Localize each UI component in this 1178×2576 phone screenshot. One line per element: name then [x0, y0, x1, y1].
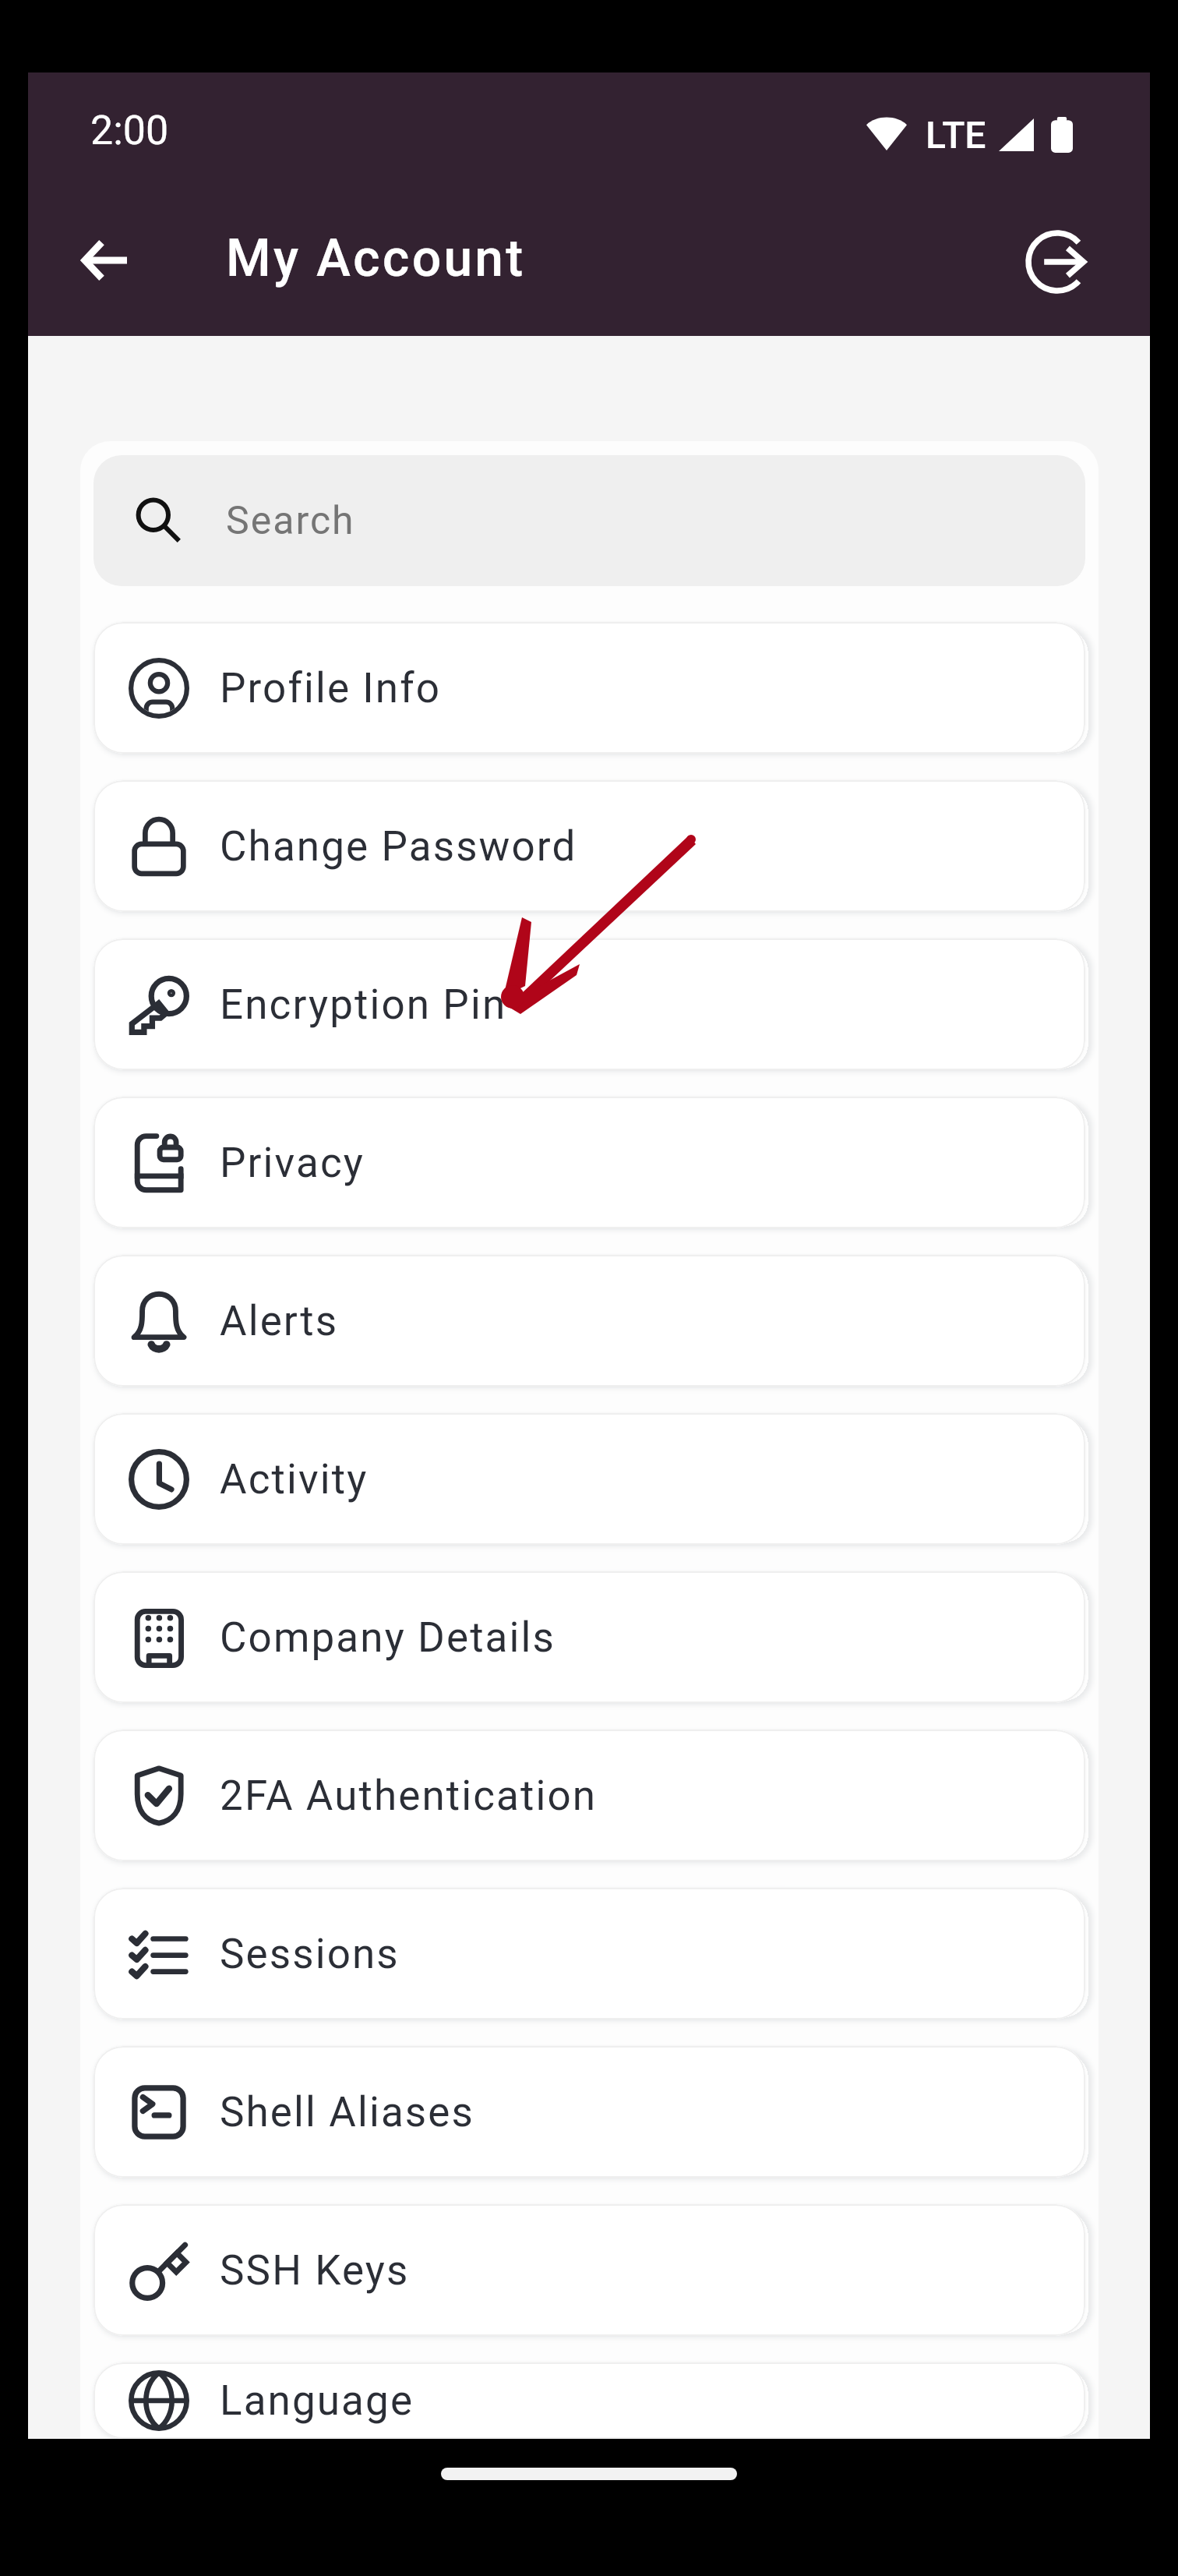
button[interactable]: SSH Keys — [93, 2204, 1085, 2336]
button[interactable]: Search — [93, 455, 1085, 586]
button[interactable]: Change Password — [93, 780, 1085, 912]
button[interactable]: Back — [70, 226, 139, 295]
staticText: Company Details — [220, 1613, 555, 1662]
staticText: Shell Aliases — [220, 2088, 474, 2136]
staticText: SSH Keys — [220, 2246, 410, 2295]
staticText: Language — [220, 2376, 414, 2425]
staticText: Profile Info — [220, 664, 442, 712]
staticText: 2FA Authentication — [220, 1772, 598, 1820]
button[interactable]: Activity — [93, 1413, 1085, 1545]
staticText: Alerts — [220, 1297, 339, 1345]
button[interactable]: 2FA Authentication — [93, 1730, 1085, 1861]
button[interactable]: Company Details — [93, 1571, 1085, 1703]
staticText: Sessions — [220, 1930, 400, 1978]
staticText: My Account — [226, 228, 526, 288]
button[interactable]: Alerts — [93, 1255, 1085, 1387]
staticText: Activity — [220, 1455, 369, 1504]
button[interactable]: Shell Aliases — [93, 2046, 1085, 2178]
button[interactable]: Language — [93, 2362, 1085, 2439]
staticText: Privacy — [220, 1139, 365, 1187]
staticText: Search — [226, 498, 355, 544]
button[interactable]: Privacy — [93, 1097, 1085, 1228]
button[interactable]: Encryption Pin — [93, 938, 1085, 1070]
staticText: 2:00 — [90, 107, 169, 154]
button[interactable]: Log out — [1020, 224, 1095, 299]
staticText: LTE — [926, 113, 986, 157]
staticText: Change Password — [220, 822, 577, 871]
staticText: Encryption Pin — [220, 981, 507, 1029]
button[interactable]: Profile Info — [93, 622, 1085, 754]
button[interactable]: Sessions — [93, 1888, 1085, 2019]
